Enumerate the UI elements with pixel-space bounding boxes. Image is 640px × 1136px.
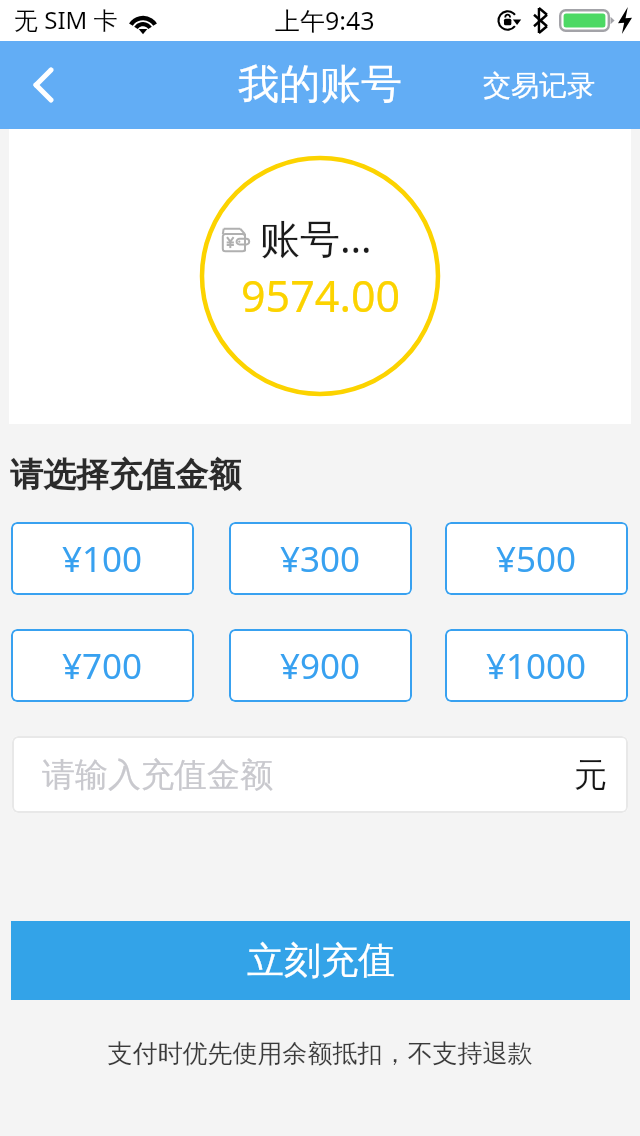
staticText: 请选择充值金额 (10, 454, 241, 496)
button[interactable]: ¥300 (229, 522, 412, 595)
button[interactable]: 请输入充值金额 (12, 736, 628, 813)
button[interactable]: ¥1000 (445, 629, 628, 702)
staticText: 无 SIM 卡 (14, 3, 118, 36)
staticText: 支付时优先使用余额抵扣，不支持退款 (0, 1038, 640, 1069)
staticText: 9574.00 (241, 266, 401, 325)
button[interactable]: ¥700 (11, 629, 194, 702)
button[interactable]: ¥100 (11, 522, 194, 595)
staticText: ¥1000 (486, 642, 587, 690)
staticText: ¥100 (62, 535, 143, 583)
staticText: ¥700 (62, 642, 143, 690)
staticText: 账号… (260, 210, 372, 265)
button[interactable]: ¥900 (229, 629, 412, 702)
staticText: ¥300 (280, 535, 361, 583)
staticText: 立刻充值 (247, 937, 395, 984)
staticText: 我的账号 (238, 59, 402, 111)
button[interactable]: 交易记录 (483, 41, 595, 129)
staticText: ¥900 (280, 642, 361, 690)
button[interactable]: Back (0, 41, 86, 129)
staticText: 交易记录 (483, 68, 595, 103)
staticText: 上午9:43 (275, 3, 375, 37)
button[interactable]: 立刻充值 (11, 921, 630, 1000)
button[interactable]: ¥500 (445, 522, 628, 595)
staticText: 请输入充值金额 (42, 754, 273, 796)
staticText: 元 (574, 754, 607, 796)
staticText: ¥500 (496, 535, 577, 583)
